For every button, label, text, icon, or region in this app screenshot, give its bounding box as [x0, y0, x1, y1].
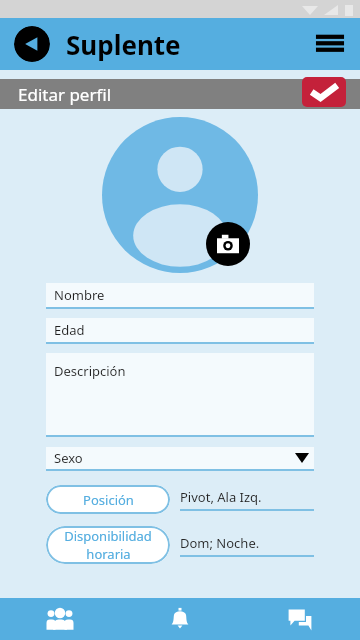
button[interactable]: People	[0, 598, 120, 640]
button[interactable]: Pivot, Ala Izq.	[180, 488, 314, 511]
staticText: Sexo	[54, 449, 83, 467]
staticText: Editar perfil	[18, 83, 112, 106]
button[interactable]: Notifications	[120, 598, 240, 640]
staticText: horaria	[86, 545, 131, 563]
staticText: Pivot, Ala Izq.	[180, 488, 262, 506]
button[interactable]: Change photo	[206, 222, 250, 266]
button[interactable]: Edad	[46, 318, 314, 342]
staticText: Posición	[83, 491, 134, 509]
button[interactable]: Dom; Noche.	[180, 534, 314, 557]
button[interactable]: Menu	[312, 26, 348, 62]
button[interactable]: Save	[302, 77, 346, 107]
button[interactable]: Sexo	[46, 447, 314, 469]
staticText: Edad	[54, 321, 85, 339]
staticText: Disponibilidad	[64, 527, 152, 545]
button[interactable]: Disponibilidad	[46, 526, 170, 564]
button[interactable]: Back	[14, 26, 50, 62]
staticText: Suplente	[66, 27, 181, 62]
staticText: Nombre	[54, 286, 105, 304]
button[interactable]: Messages	[240, 598, 360, 640]
staticText: Dom; Noche.	[180, 534, 260, 552]
button[interactable]: Descripción	[46, 353, 314, 435]
button[interactable]: Posición	[46, 485, 170, 514]
button[interactable]: Nombre	[46, 283, 314, 307]
staticText: Descripción	[54, 362, 126, 380]
